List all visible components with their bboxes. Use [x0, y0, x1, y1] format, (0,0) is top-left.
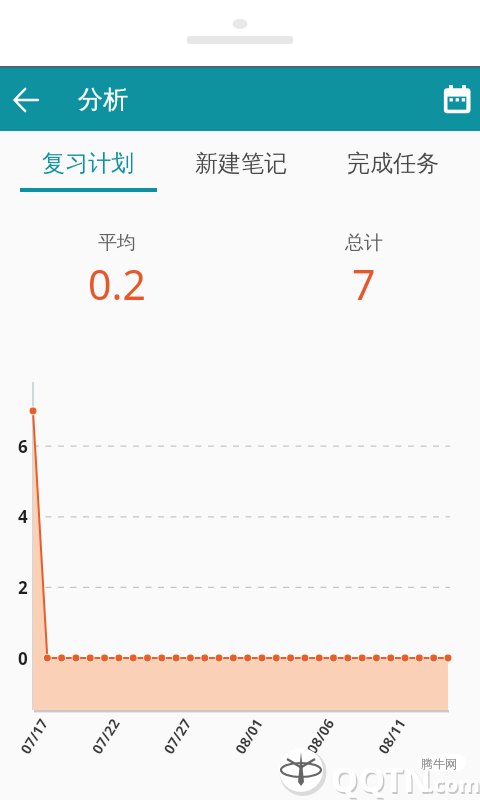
staticText: 7 [352, 256, 376, 310]
staticText: 完成任务 [347, 149, 439, 178]
staticText: 0.2 [88, 256, 146, 310]
staticText: 复习计划 [42, 149, 134, 178]
staticText: 分析 [78, 84, 128, 115]
button[interactable]: Calendar [434, 68, 480, 131]
button[interactable]: Back [0, 68, 52, 131]
button[interactable]: 复习计划 [0, 131, 160, 191]
staticText: 总计 [345, 231, 383, 255]
staticText: 平均 [98, 231, 136, 255]
staticText: 新建笔记 [195, 149, 287, 178]
button[interactable]: 新建笔记 [160, 131, 320, 191]
button[interactable]: 完成任务 [320, 131, 480, 191]
